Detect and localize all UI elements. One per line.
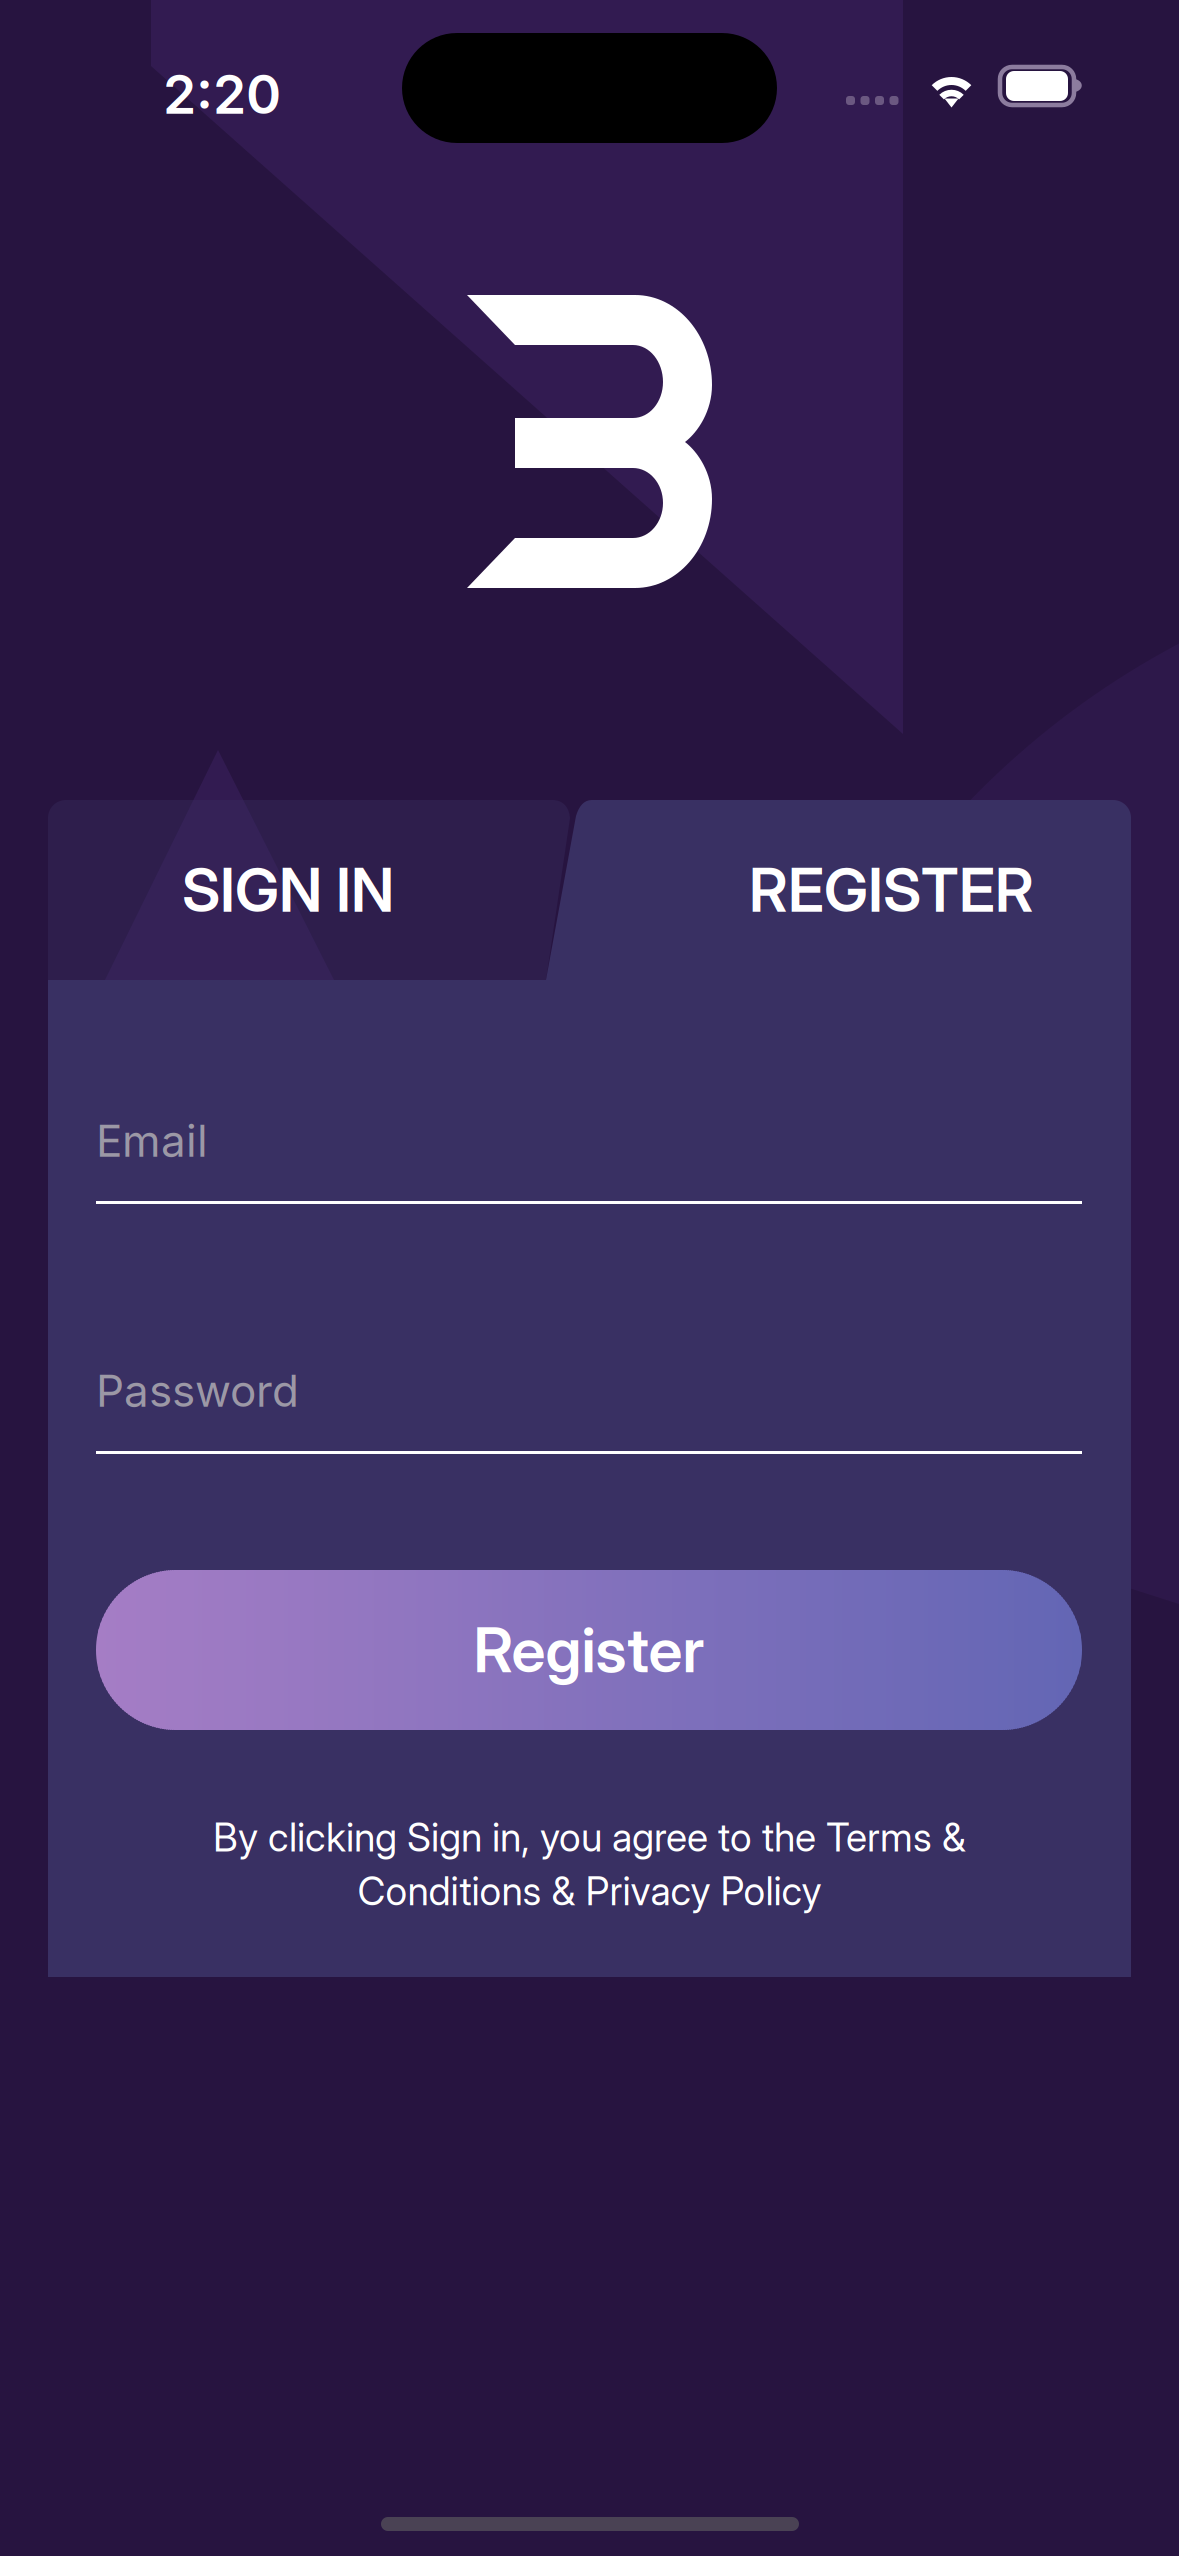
button[interactable]: Register (96, 1570, 1082, 1730)
button[interactable]: Email (96, 1090, 1082, 1204)
staticText: REGISTER (749, 854, 1034, 926)
staticText: SIGN IN (182, 854, 394, 926)
button[interactable]: Password (96, 1340, 1082, 1454)
staticText: Conditions & Privacy Policy (357, 1868, 821, 1915)
button[interactable]: REGISTER (546, 800, 1131, 980)
button[interactable]: SIGN IN (48, 800, 570, 980)
staticText: Password (96, 1364, 299, 1417)
staticText: By clicking Sign in, you agree to the Te… (213, 1814, 966, 1861)
staticText: 2:20 (163, 62, 281, 126)
staticText: Email (96, 1114, 208, 1167)
staticText: Register (473, 1613, 704, 1687)
